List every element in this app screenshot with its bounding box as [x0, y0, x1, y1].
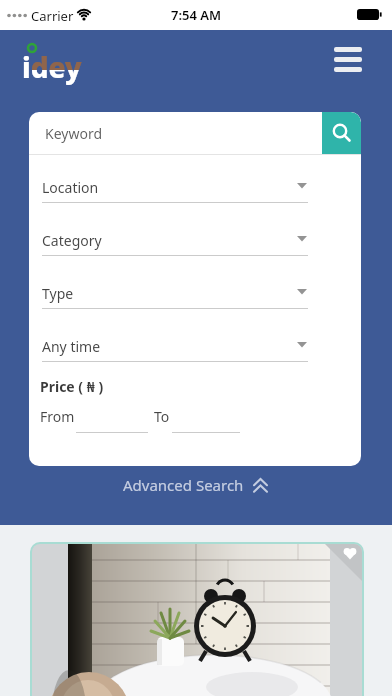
button[interactable]: Keyword	[29, 112, 361, 154]
button[interactable]: Advanced Search	[0, 474, 392, 496]
staticText: 7:54 AM	[171, 6, 222, 24]
staticText: Advanced Search	[123, 475, 244, 495]
button[interactable]: Location	[42, 176, 308, 206]
staticText: From	[40, 407, 75, 426]
staticText: Type	[42, 284, 74, 303]
button[interactable]	[322, 112, 361, 154]
button[interactable]	[334, 47, 364, 75]
button[interactable]: Category	[42, 229, 308, 259]
button[interactable]	[30, 542, 364, 696]
staticText: Category	[42, 231, 102, 250]
button[interactable]: Type	[42, 282, 308, 312]
staticText: To	[154, 407, 170, 426]
button[interactable]: idey	[20, 38, 110, 90]
staticText: Carrier	[31, 7, 74, 25]
button[interactable]: Any time	[42, 335, 308, 365]
staticText: Price ( ₦ )	[40, 377, 104, 396]
button[interactable]	[328, 544, 362, 578]
staticText: Keyword	[45, 124, 103, 143]
staticText: Any time	[42, 337, 101, 356]
staticText: idey	[22, 48, 82, 86]
staticText: Location	[42, 178, 99, 197]
